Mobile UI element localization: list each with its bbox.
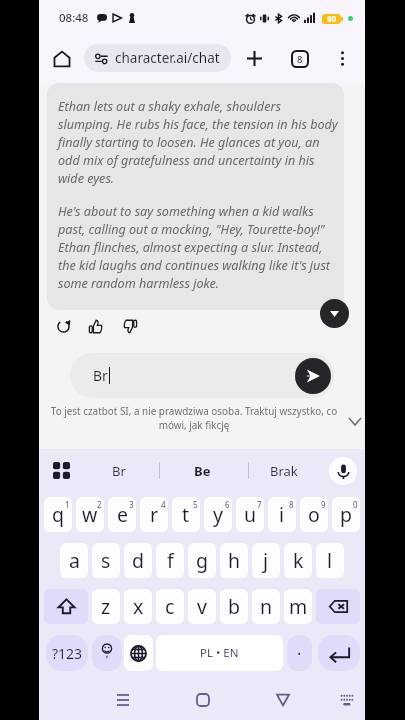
button[interactable]: Like — [82, 313, 108, 339]
button[interactable]: j — [252, 543, 280, 578]
button[interactable]: v — [188, 589, 216, 624]
button[interactable]: g — [188, 543, 216, 578]
button[interactable]: Tabs — [283, 42, 316, 75]
button[interactable]: Enter — [318, 635, 360, 671]
staticText: . — [297, 638, 302, 660]
button[interactable]: New tab — [238, 42, 271, 75]
button[interactable]: Dislike — [117, 313, 143, 339]
button[interactable]: . — [287, 635, 312, 671]
button[interactable]: m — [284, 589, 312, 624]
staticText: l — [327, 547, 333, 574]
button[interactable]: u — [236, 497, 264, 532]
button[interactable]: d — [124, 543, 152, 578]
button[interactable]: y — [204, 497, 232, 532]
button[interactable]: Send — [295, 358, 331, 394]
button[interactable]: z — [92, 589, 120, 624]
staticText: k — [293, 547, 304, 574]
staticText: v — [197, 593, 207, 620]
button[interactable]: Emoji — [92, 635, 122, 671]
staticText: w — [82, 501, 98, 528]
button[interactable]: Back — [267, 684, 299, 716]
staticText: 1 — [65, 499, 70, 510]
button[interactable]: More options — [326, 42, 358, 74]
button[interactable]: Ethan lets out a shaky exhale, shoulders… — [47, 83, 344, 310]
button[interactable]: Regenerate — [50, 313, 76, 339]
button[interactable]: Brak — [249, 450, 319, 492]
staticText: PL • EN — [200, 645, 239, 661]
staticText: Be — [194, 462, 211, 480]
staticText: 08:48 — [59, 10, 89, 26]
staticText: character.ai/chat — [115, 49, 220, 67]
staticText: s — [101, 547, 111, 574]
button[interactable]: Voice input — [329, 457, 357, 485]
button[interactable]: f — [156, 543, 184, 578]
staticText: h — [228, 547, 241, 574]
button[interactable]: Home — [187, 684, 219, 716]
button[interactable]: Br — [84, 450, 154, 492]
staticText: q — [52, 501, 64, 528]
staticText: To jest czatbot SI, a nie prawdziwa osob… — [49, 404, 339, 432]
button[interactable]: x — [124, 589, 152, 624]
staticText: 9 — [321, 499, 326, 510]
staticText: t — [182, 501, 190, 528]
button[interactable]: n — [252, 589, 280, 624]
staticText: c — [165, 593, 175, 620]
button[interactable]: character.ai/chat — [84, 44, 231, 72]
staticText: ?123 — [52, 644, 83, 663]
button[interactable]: Change language — [124, 635, 153, 671]
staticText: a — [69, 547, 80, 574]
button[interactable]: ?123 — [46, 635, 88, 671]
button[interactable]: Backspace — [316, 589, 360, 624]
button[interactable]: o — [300, 497, 328, 532]
staticText: He's about to say something when a kid w… — [58, 203, 338, 292]
staticText: Brak — [270, 462, 298, 480]
staticText: o — [308, 501, 320, 528]
staticText: Br — [112, 462, 126, 480]
staticText: n — [260, 593, 273, 620]
button[interactable]: e — [108, 497, 136, 532]
button[interactable]: w — [76, 497, 104, 532]
staticText: 7 — [257, 499, 262, 510]
button[interactable]: a — [60, 543, 88, 578]
button[interactable]: Home — [44, 41, 80, 77]
staticText: f — [167, 547, 174, 574]
staticText: 3 — [129, 499, 134, 510]
staticText: Ethan lets out a shaky exhale, shoulders… — [58, 98, 338, 187]
staticText: j — [263, 547, 269, 574]
staticText: 8 — [289, 499, 294, 510]
staticText: u — [244, 501, 257, 528]
button[interactable]: p — [332, 497, 360, 532]
staticText: p — [340, 501, 352, 528]
staticText: 4 — [161, 499, 166, 510]
button[interactable]: c — [156, 589, 184, 624]
button[interactable]: Scroll to bottom — [320, 299, 349, 328]
staticText: 6 — [225, 499, 230, 510]
staticText: i — [279, 501, 285, 528]
button[interactable]: Keyboard — [331, 684, 363, 716]
staticText: d — [132, 547, 144, 574]
button[interactable]: h — [220, 543, 248, 578]
button[interactable]: Shift — [44, 589, 88, 624]
staticText: y — [213, 501, 223, 528]
button[interactable]: l — [316, 543, 344, 578]
staticText: 90 — [327, 13, 337, 24]
button[interactable]: Br — [70, 353, 334, 398]
button[interactable]: s — [92, 543, 120, 578]
button[interactable]: Expand — [344, 410, 366, 432]
button[interactable]: PL • EN — [156, 635, 283, 671]
staticText: Br — [93, 366, 108, 385]
button[interactable]: Be — [167, 450, 237, 492]
button[interactable]: i — [268, 497, 296, 532]
button[interactable]: q — [44, 497, 72, 532]
staticText: e — [117, 501, 128, 528]
staticText: r — [150, 501, 159, 528]
button[interactable]: k — [284, 543, 312, 578]
button[interactable]: b — [220, 589, 248, 624]
button[interactable]: Recent apps — [107, 684, 139, 716]
button[interactable]: t — [172, 497, 200, 532]
button[interactable]: Keyboard toolbar — [46, 455, 76, 485]
staticText: b — [228, 593, 240, 620]
staticText: m — [289, 593, 308, 620]
button[interactable]: r — [140, 497, 168, 532]
staticText: 0 — [353, 499, 358, 510]
